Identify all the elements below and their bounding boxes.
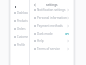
- button[interactable]: Notification settings: [29, 8, 73, 12]
- button[interactable]: Back: [33, 3, 37, 7]
- staticText: Profile: [17, 43, 25, 47]
- staticText: settings: [46, 3, 58, 7]
- button[interactable]: Terms of service: [29, 47, 73, 51]
- button[interactable]: Orders: [11, 27, 28, 31]
- staticText: Payment methods: [37, 24, 63, 28]
- staticText: Notification settings: [37, 8, 66, 12]
- button[interactable]: Help: [29, 39, 73, 43]
- button[interactable]: Dashboard: [11, 11, 28, 15]
- staticText: Terms of service: [37, 47, 60, 51]
- button[interactable]: Payment methods: [29, 24, 73, 28]
- button[interactable]: Toggle dark mode: [65, 33, 69, 35]
- button[interactable]: Personal information: [29, 16, 73, 20]
- button[interactable]: Customers: [11, 35, 28, 39]
- button[interactable]: Products: [11, 19, 28, 23]
- staticText: Customers: [17, 35, 28, 39]
- staticText: Products: [17, 19, 28, 23]
- button[interactable]: Profile: [11, 43, 28, 47]
- staticText: Help: [37, 39, 44, 43]
- button[interactable]: Menu: [11, 5, 28, 9]
- staticText: Dark mode: [37, 32, 53, 36]
- staticText: Personal information: [37, 16, 67, 20]
- button[interactable]: Dark mode: [29, 32, 73, 36]
- staticText: Orders: [17, 27, 26, 31]
- staticText: Dashboard: [17, 11, 28, 15]
